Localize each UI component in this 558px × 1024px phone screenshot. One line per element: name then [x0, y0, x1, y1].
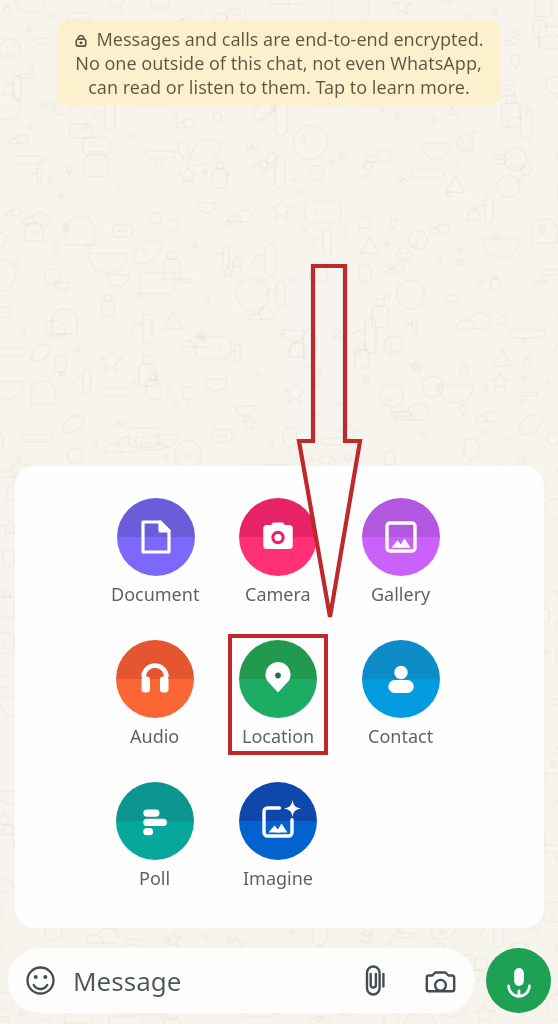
- staticText: Location: [242, 724, 315, 749]
- other: Emoji: [26, 966, 55, 995]
- button[interactable]: Audio: [105, 634, 205, 755]
- staticText: No one outside of this chat, not even Wh…: [75, 51, 482, 76]
- button[interactable]: Camera: [228, 492, 328, 613]
- button[interactable]: Messages and calls are end-to-end encryp…: [57, 20, 500, 105]
- staticText: Message: [73, 963, 182, 998]
- staticText: Poll: [139, 866, 171, 891]
- staticText: can read or listen to them. Tap to learn…: [88, 75, 470, 100]
- staticText: Messages and calls are end-to-end encryp…: [96, 27, 484, 52]
- button[interactable]: Poll: [105, 776, 205, 897]
- staticText: Imagine: [243, 866, 314, 891]
- staticText: Camera: [245, 582, 311, 607]
- other: Camera: [426, 966, 455, 995]
- staticText: Document: [111, 582, 200, 607]
- staticText: Gallery: [371, 582, 431, 607]
- staticText: Contact: [368, 724, 434, 749]
- other: Attach: [361, 966, 390, 995]
- button[interactable]: Imagine: [228, 776, 328, 897]
- button[interactable]: Voice message: [486, 948, 551, 1013]
- button[interactable]: Contact: [351, 634, 451, 755]
- button[interactable]: Emoji: [8, 948, 475, 1013]
- staticText: Audio: [130, 724, 180, 749]
- button[interactable]: Location: [228, 634, 328, 755]
- button[interactable]: Gallery: [351, 492, 451, 613]
- button[interactable]: Document: [100, 492, 211, 613]
